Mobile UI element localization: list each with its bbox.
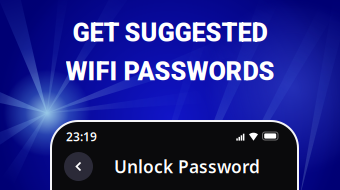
staticText: 23:19: [66, 128, 97, 144]
button[interactable]: Back: [64, 152, 93, 181]
staticText: GET SUGGESTED: [72, 18, 267, 48]
staticText: Unlock Password: [114, 155, 260, 178]
staticText: WIFI PASSWORDS: [65, 57, 274, 86]
